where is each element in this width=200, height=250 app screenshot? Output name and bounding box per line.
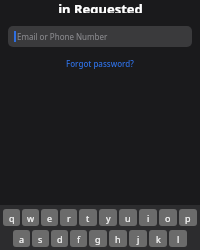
button[interactable]: Forgot password? <box>62 56 138 71</box>
button[interactable]: g <box>89 230 107 247</box>
staticText: i <box>147 212 150 224</box>
staticText: in Requested <box>58 0 143 13</box>
staticText: r <box>67 212 71 224</box>
button[interactable]: l <box>169 230 187 247</box>
button[interactable]: d <box>51 230 68 247</box>
button[interactable]: o <box>159 209 177 226</box>
button[interactable]: q <box>3 209 20 226</box>
button[interactable]: f <box>70 230 87 247</box>
button[interactable]: j <box>129 230 147 247</box>
staticText: e <box>47 212 53 224</box>
staticText: p <box>185 212 191 224</box>
button[interactable]: w <box>22 209 39 226</box>
button[interactable]: y <box>99 209 117 226</box>
staticText: h <box>115 233 121 245</box>
staticText: s <box>38 233 43 245</box>
staticText: j <box>137 233 140 245</box>
staticText: t <box>86 212 90 224</box>
button[interactable]: h <box>109 230 127 247</box>
button[interactable]: i <box>139 209 157 226</box>
button[interactable]: Email or Phone Number input <box>8 26 192 47</box>
staticText: Forgot password? <box>66 58 134 69</box>
button[interactable]: p <box>179 209 197 226</box>
button[interactable]: u <box>119 209 137 226</box>
staticText: o <box>165 212 171 224</box>
staticText: a <box>19 233 25 245</box>
staticText: Email or Phone Number <box>17 31 108 42</box>
staticText: g <box>95 233 101 245</box>
staticText: w <box>27 212 35 224</box>
staticText: k <box>156 233 161 245</box>
staticText: u <box>125 212 131 224</box>
staticText: l <box>177 233 180 245</box>
button[interactable]: e <box>41 209 58 226</box>
staticText: d <box>57 233 63 245</box>
button[interactable]: s <box>32 230 49 247</box>
button[interactable]: r <box>60 209 77 226</box>
button[interactable]: t <box>79 209 97 226</box>
staticText: q <box>9 212 15 224</box>
button[interactable]: a <box>13 230 30 247</box>
staticText: y <box>106 212 111 224</box>
staticText: f <box>77 233 81 245</box>
button[interactable]: k <box>149 230 167 247</box>
